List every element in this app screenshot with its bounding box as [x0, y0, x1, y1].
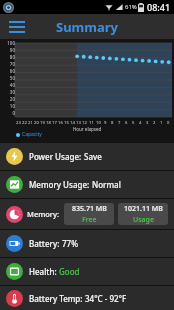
- staticText: 20: [9, 96, 15, 102]
- staticText: 70: [9, 61, 15, 67]
- staticText: 17: [52, 120, 57, 126]
- staticText: 835.71 MB: [72, 204, 107, 214]
- staticText: 23: [16, 120, 21, 126]
- staticText: 1: [160, 120, 163, 126]
- staticText: Normal: [92, 179, 121, 190]
- staticText: Battery Temp:: [29, 293, 85, 304]
- staticText: 8: [111, 120, 114, 126]
- staticText: 12: [82, 120, 87, 126]
- staticText: Capacity: [22, 131, 42, 138]
- staticText: 80: [9, 54, 15, 60]
- staticText: 4: [139, 120, 142, 126]
- staticText: Hour elapsed: [73, 126, 102, 132]
- staticText: Free: [82, 215, 97, 225]
- staticText: 18: [46, 120, 51, 126]
- staticText: Save: [84, 151, 102, 162]
- staticText: 6: [125, 120, 128, 126]
- staticText: Summary: [56, 18, 118, 36]
- staticText: 77%: [62, 238, 78, 249]
- staticText: 5: [132, 120, 135, 126]
- staticText: 22: [22, 120, 27, 126]
- staticText: 21: [28, 120, 33, 126]
- staticText: 34°C - 92°F: [85, 293, 127, 304]
- button[interactable]: Health:: [0, 258, 174, 285]
- staticText: 19: [40, 120, 45, 126]
- staticText: 0: [167, 120, 170, 126]
- staticText: 61%: [125, 3, 137, 11]
- staticText: 40: [9, 82, 15, 88]
- staticText: 14: [70, 120, 75, 126]
- staticText: 50: [9, 75, 15, 81]
- staticText: 100: [7, 40, 15, 46]
- staticText: 15: [64, 120, 69, 126]
- staticText: 2: [153, 120, 156, 126]
- staticText: 60: [9, 68, 15, 74]
- button[interactable]: 1021.11 MB: [118, 203, 168, 225]
- staticText: Health:: [29, 266, 59, 277]
- staticText: 7: [118, 120, 121, 126]
- button[interactable]: Battery Temp:: [0, 286, 174, 310]
- staticText: 9: [104, 120, 107, 126]
- staticText: Good: [59, 266, 80, 277]
- staticText: Memory Usage:: [29, 179, 92, 190]
- staticText: 10: [9, 103, 15, 109]
- staticText: Battery:: [29, 238, 62, 249]
- staticText: 30: [9, 89, 15, 95]
- staticText: Usage: [133, 215, 154, 225]
- staticText: Memory:: [27, 209, 60, 219]
- staticText: 3: [146, 120, 149, 126]
- button[interactable]: 835.71 MB: [64, 203, 114, 225]
- button[interactable]: Memory Usage:: [0, 171, 174, 198]
- staticText: 0: [12, 110, 15, 116]
- button[interactable]: Battery:: [0, 230, 174, 257]
- staticText: 1021.11 MB: [124, 204, 163, 214]
- button[interactable]: Open navigation menu: [0, 14, 34, 39]
- staticText: 11: [89, 120, 94, 126]
- staticText: Power Usage:: [29, 151, 84, 162]
- staticText: 20: [34, 120, 39, 126]
- staticText: 13: [76, 120, 81, 126]
- button[interactable]: Power Usage:: [0, 143, 174, 170]
- button[interactable]: Memory:: [0, 199, 174, 229]
- staticText: 08:41: [147, 1, 171, 13]
- staticText: 90: [9, 47, 15, 53]
- staticText: 10: [96, 120, 101, 126]
- staticText: 16: [58, 120, 63, 126]
